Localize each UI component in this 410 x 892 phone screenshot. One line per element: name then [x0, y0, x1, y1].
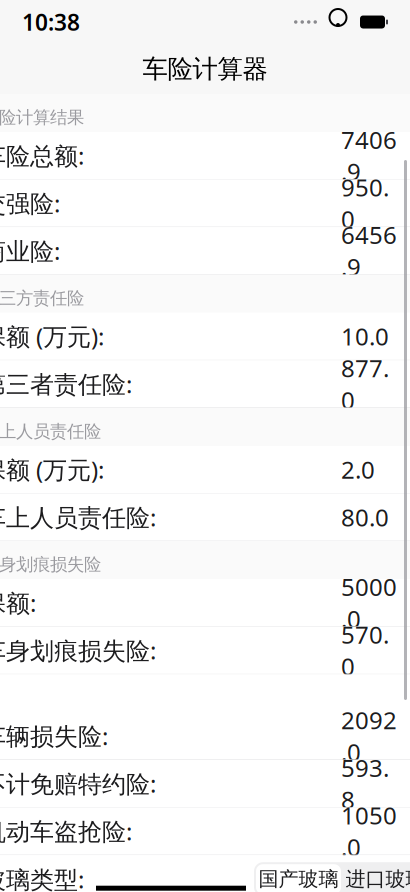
button[interactable]: 车险总额:	[0, 132, 410, 180]
staticText: 950.0	[341, 171, 389, 235]
button[interactable]: 保额 (万元):	[0, 313, 410, 360]
staticText: 5000.0	[341, 571, 397, 634]
staticText: 第三方责任险	[0, 287, 84, 309]
staticText: 877.0	[341, 352, 389, 416]
staticText: 玻璃类型:	[0, 863, 84, 892]
staticText: 交强险:	[0, 187, 60, 219]
staticText: 1050.0	[341, 799, 397, 863]
staticText: 进口玻璃	[345, 867, 410, 891]
staticText: 保额:	[0, 587, 36, 619]
staticText: 570.0	[341, 618, 389, 682]
staticText: 6456.9	[341, 219, 397, 282]
staticText: 第三者责任险:	[0, 368, 132, 400]
button[interactable]: 车身划痕损失险:	[0, 627, 410, 674]
staticText: 不计免赔特约险:	[0, 768, 156, 799]
staticText: 车上人员责任险:	[0, 501, 156, 533]
staticText: 车身划痕损失险	[0, 554, 101, 575]
staticText: 车辆损失险:	[0, 720, 108, 752]
staticText: 车险总额:	[0, 140, 84, 171]
button[interactable]: 商业险:	[0, 227, 410, 275]
staticText: 商业险:	[0, 235, 60, 267]
staticText: 80.0	[341, 501, 389, 533]
button[interactable]: 保额:	[0, 579, 410, 627]
button[interactable]: 车险计算器	[0, 44, 410, 94]
staticText: 国产玻璃	[258, 867, 338, 891]
staticText: 593.8	[341, 752, 389, 815]
staticText: 机动车盗抢险:	[0, 815, 132, 847]
staticText: 车身划痕损失险:	[0, 634, 156, 666]
staticText: 车险计算结果	[0, 107, 84, 128]
staticText: 保额 (万元):	[0, 320, 104, 352]
staticText: 保额 (万元):	[0, 454, 104, 485]
button[interactable]: 第三者责任险:	[0, 360, 410, 408]
button[interactable]: 交强险:	[0, 180, 410, 227]
staticText: 2092.0	[341, 704, 397, 768]
staticText: 10:38	[22, 7, 80, 37]
button[interactable]: 保额 (万元):	[0, 446, 410, 494]
staticText: 车上人员责任险	[0, 421, 101, 442]
button[interactable]: 国产玻璃	[254, 862, 343, 892]
staticText: 车险计算器	[142, 53, 267, 84]
button[interactable]: 车上人员责任险:	[0, 494, 410, 541]
staticText: 7406.9	[341, 124, 397, 187]
staticText: 2.0	[341, 454, 375, 485]
staticText: 10.0	[341, 320, 389, 352]
button[interactable]: 进口玻璃	[343, 862, 410, 892]
button[interactable]: 不计免赔特约险:	[0, 760, 410, 808]
button[interactable]: 机动车盗抢险:	[0, 808, 410, 855]
button[interactable]: 车辆损失险:	[0, 712, 410, 760]
